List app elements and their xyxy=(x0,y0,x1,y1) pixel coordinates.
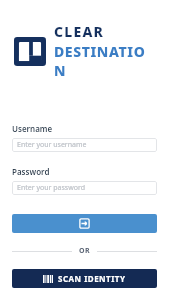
staticText: DESTINATION xyxy=(54,42,157,80)
staticText: SCAN IDENTITY xyxy=(58,273,126,284)
staticText: OR xyxy=(79,246,90,256)
staticText: Username xyxy=(12,123,53,134)
staticText: Password xyxy=(12,166,50,177)
other: Scan identity xyxy=(43,275,53,283)
button[interactable]: Log in xyxy=(12,214,157,233)
button[interactable]: Enter your password xyxy=(12,181,157,195)
staticText: Enter your password xyxy=(17,183,85,193)
staticText: CLEAR xyxy=(54,22,105,41)
button[interactable]: Scan identity xyxy=(12,269,157,288)
button[interactable]: Enter your username xyxy=(12,138,157,152)
staticText: Enter your username xyxy=(17,140,87,150)
other: Log in xyxy=(79,218,90,229)
